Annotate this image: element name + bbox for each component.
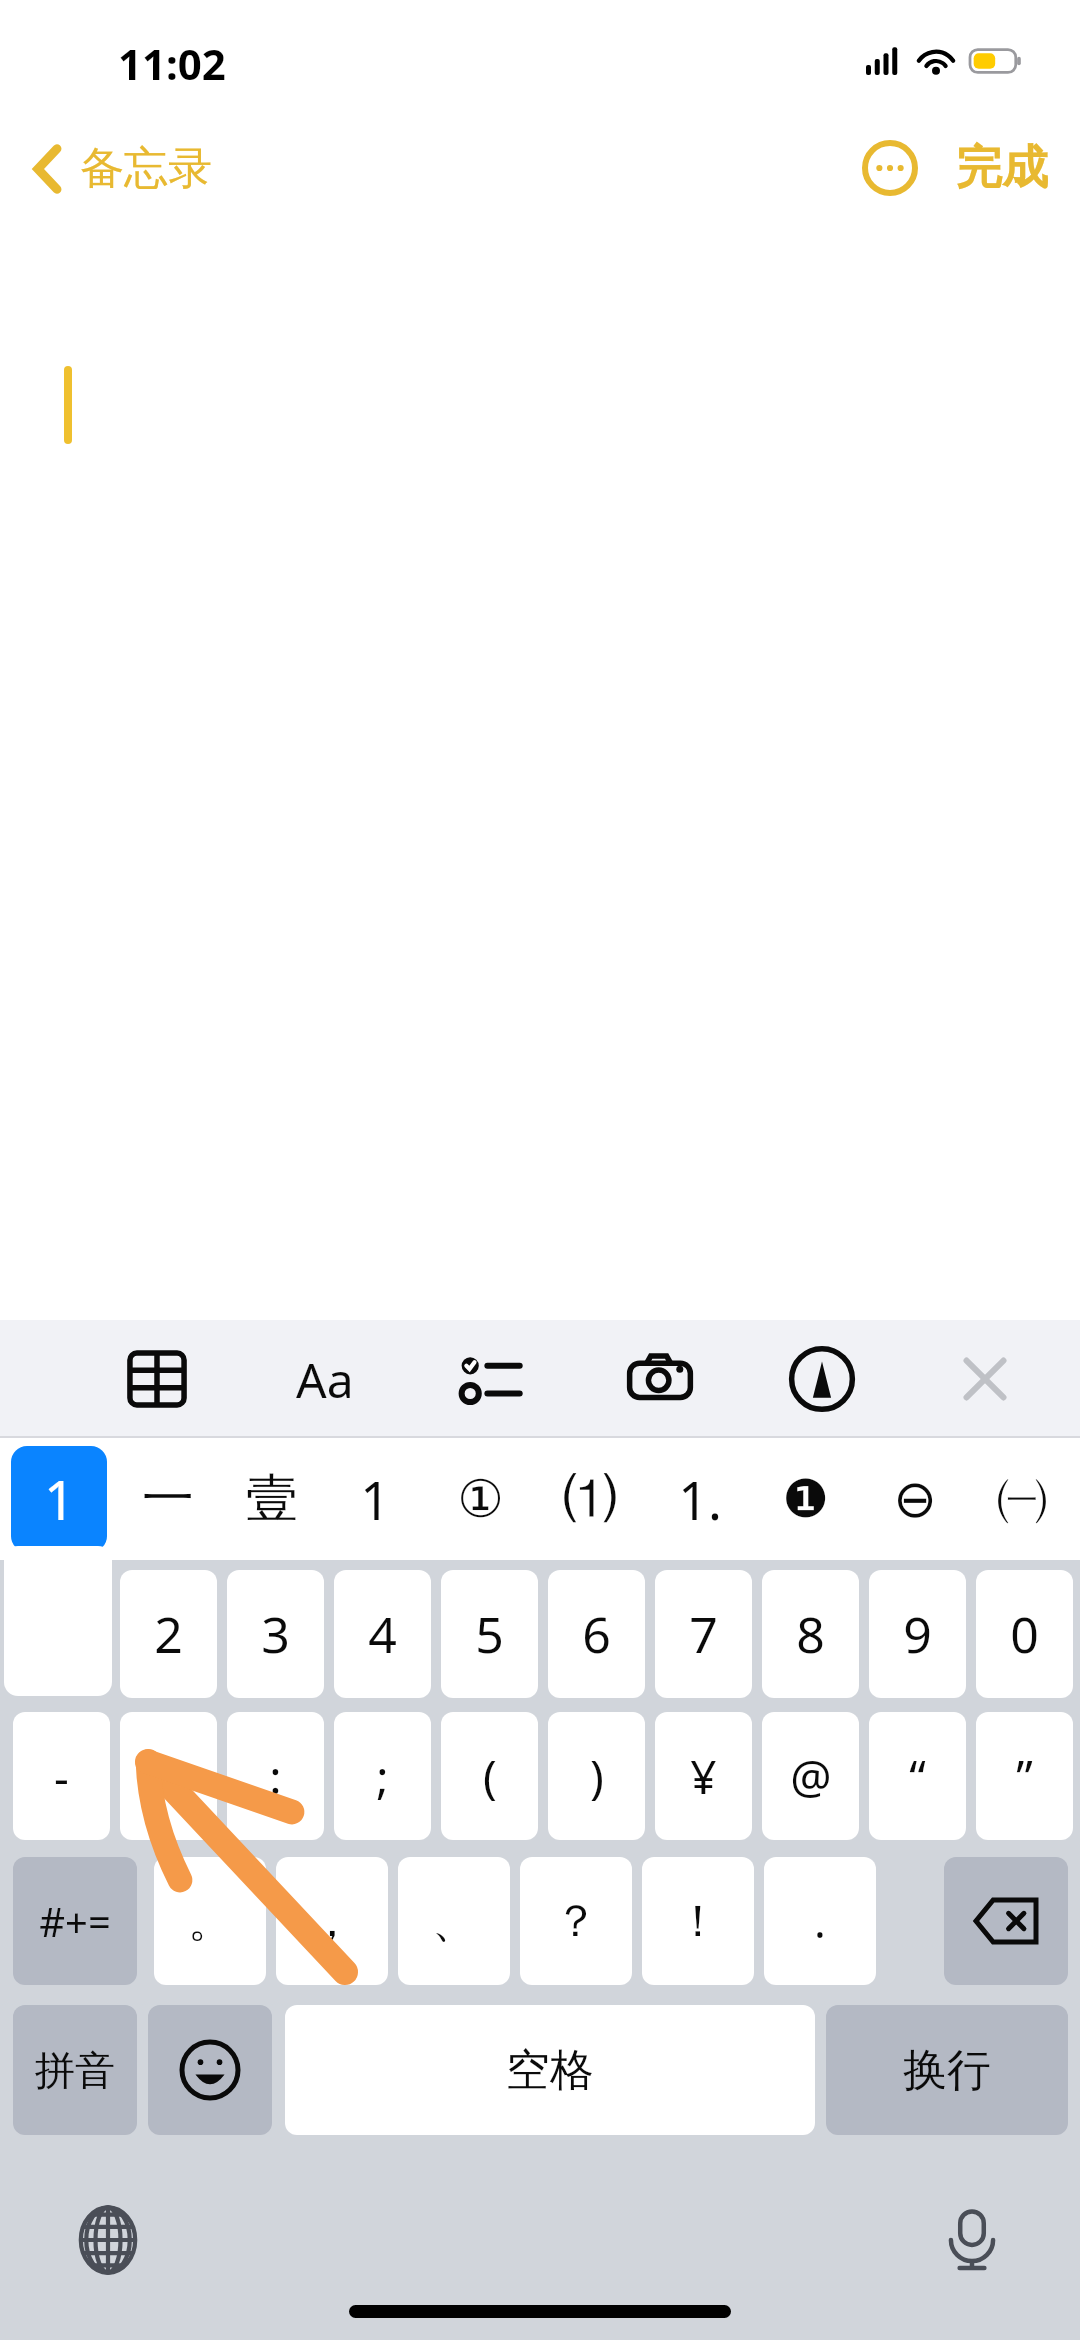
- staticText: @: [790, 1745, 832, 1808]
- button[interactable]: Delete: [944, 1857, 1068, 1985]
- staticText: ？: [554, 1894, 598, 1949]
- button[interactable]: (: [441, 1712, 538, 1840]
- button[interactable]: [4, 1546, 112, 1696]
- staticText: .: [814, 1891, 826, 1951]
- button[interactable]: 拼音: [13, 2005, 137, 2135]
- staticText: 拼音: [35, 2045, 115, 2095]
- staticText: #+=: [39, 1894, 111, 1948]
- staticText: 。: [188, 1894, 232, 1949]
- staticText: 8: [796, 1600, 825, 1668]
- button[interactable]: ¥: [655, 1712, 752, 1840]
- staticText: 9: [903, 1600, 932, 1668]
- button[interactable]: ⑴: [538, 1442, 642, 1556]
- button[interactable]: 9: [869, 1570, 966, 1698]
- button[interactable]: :: [227, 1712, 324, 1840]
- button[interactable]: Text format: [271, 1328, 379, 1430]
- button[interactable]: ): [548, 1712, 645, 1840]
- button[interactable]: More options: [852, 130, 928, 206]
- staticText: 3: [261, 1600, 290, 1668]
- button[interactable]: 5: [441, 1570, 538, 1698]
- staticText: ): [590, 1745, 604, 1808]
- staticText: 2: [154, 1600, 183, 1668]
- staticText: 、: [432, 1894, 476, 1949]
- button[interactable]: [0, 224, 1080, 2340]
- button[interactable]: 3: [227, 1570, 324, 1698]
- button[interactable]: Markup: [768, 1328, 876, 1430]
- button[interactable]: Close: [931, 1328, 1039, 1430]
- staticText: 一: [142, 1466, 194, 1532]
- button[interactable]: 备忘录: [26, 133, 220, 204]
- button[interactable]: 0: [976, 1570, 1073, 1698]
- staticText: ❶: [782, 1469, 829, 1530]
- button[interactable]: @: [762, 1712, 859, 1840]
- staticText: -: [54, 1745, 69, 1808]
- staticText: 5: [475, 1600, 504, 1668]
- staticText: ⊖: [893, 1469, 937, 1530]
- button[interactable]: 8: [762, 1570, 859, 1698]
- button[interactable]: Dictation: [924, 2192, 1020, 2288]
- staticText: 1: [44, 1462, 75, 1536]
- button[interactable]: ㈠: [970, 1442, 1074, 1556]
- button[interactable]: #+=: [13, 1857, 137, 1985]
- button[interactable]: 7: [655, 1570, 752, 1698]
- button[interactable]: 、: [398, 1857, 510, 1985]
- button[interactable]: ！: [642, 1857, 754, 1985]
- staticText: 11:02: [118, 35, 226, 92]
- staticText: ⑴: [564, 1466, 616, 1532]
- button[interactable]: Camera: [606, 1328, 714, 1430]
- button[interactable]: ❶: [753, 1442, 857, 1556]
- staticText: ，: [310, 1894, 354, 1949]
- button[interactable]: 一: [116, 1442, 220, 1556]
- staticText: 空格: [506, 2043, 594, 2098]
- staticText: ①: [457, 1469, 504, 1530]
- button[interactable]: ⊖: [863, 1442, 967, 1556]
- button[interactable]: 1.: [648, 1442, 752, 1556]
- staticText: Aa: [296, 1347, 354, 1412]
- button[interactable]: Checklist: [436, 1328, 544, 1430]
- button[interactable]: -: [13, 1712, 110, 1840]
- button[interactable]: 4: [334, 1570, 431, 1698]
- button[interactable]: ;: [334, 1712, 431, 1840]
- staticText: ！: [676, 1894, 720, 1949]
- button[interactable]: 6: [548, 1570, 645, 1698]
- staticText: 壹: [246, 1466, 298, 1532]
- button[interactable]: ”: [976, 1712, 1073, 1840]
- button[interactable]: 完成: [950, 131, 1054, 205]
- staticText: 6: [582, 1600, 611, 1668]
- staticText: 0: [1010, 1600, 1039, 1668]
- button[interactable]: ①: [428, 1442, 532, 1556]
- button[interactable]: Switch keyboard: [60, 2192, 156, 2288]
- staticText: 7: [689, 1600, 718, 1668]
- staticText: 4: [368, 1600, 397, 1668]
- staticText: ”: [1016, 1745, 1033, 1808]
- staticText: 换行: [903, 2043, 991, 2098]
- staticText: 1: [360, 1464, 390, 1535]
- staticText: /: [160, 1745, 178, 1808]
- button[interactable]: .: [764, 1857, 876, 1985]
- button[interactable]: 空格: [285, 2005, 815, 2135]
- button[interactable]: “: [869, 1712, 966, 1840]
- button[interactable]: 壹: [220, 1442, 324, 1556]
- staticText: 完成: [956, 139, 1048, 197]
- staticText: “: [909, 1745, 926, 1808]
- staticText: 备忘录: [80, 141, 212, 196]
- staticText: (: [483, 1745, 497, 1808]
- button[interactable]: 2: [120, 1570, 217, 1698]
- staticText: 1.: [678, 1464, 722, 1535]
- button[interactable]: /: [120, 1712, 217, 1840]
- button[interactable]: 1: [323, 1442, 427, 1556]
- button[interactable]: ，: [276, 1857, 388, 1985]
- staticText: ;: [376, 1745, 389, 1808]
- button[interactable]: Table: [103, 1328, 211, 1430]
- staticText: ㈠: [996, 1466, 1048, 1532]
- button[interactable]: 。: [154, 1857, 266, 1985]
- button[interactable]: 1: [11, 1446, 107, 1552]
- staticText: :: [269, 1745, 282, 1808]
- button[interactable]: ？: [520, 1857, 632, 1985]
- button[interactable]: 换行: [826, 2005, 1068, 2135]
- button[interactable]: Emoji: [148, 2005, 272, 2135]
- staticText: ¥: [690, 1745, 717, 1808]
